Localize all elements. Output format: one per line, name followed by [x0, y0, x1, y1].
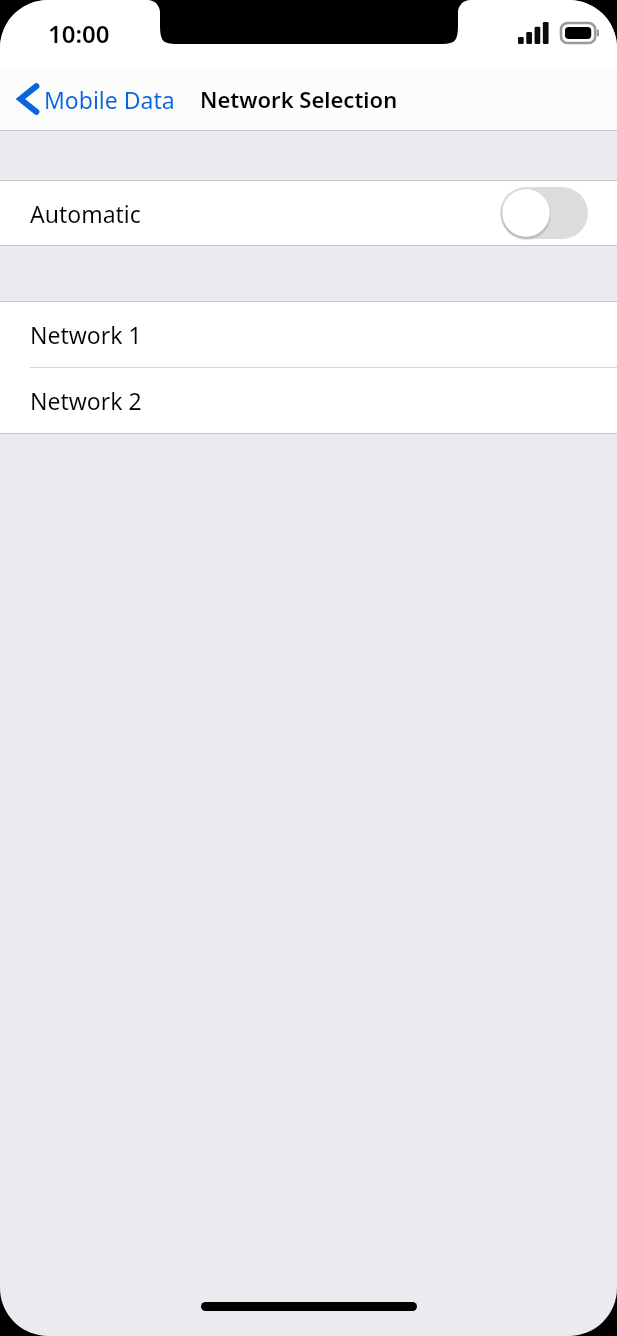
staticText: Automatic	[30, 198, 141, 229]
staticText: 10:00	[48, 17, 110, 50]
staticText: Network 1	[30, 319, 142, 350]
button[interactable]: Network 1	[0, 302, 617, 367]
staticText: Network 2	[30, 385, 142, 416]
button[interactable]: Automatic toggle	[500, 187, 588, 239]
button[interactable]: Back	[0, 77, 183, 121]
other: Back	[18, 83, 38, 115]
staticText: Mobile Data	[44, 84, 175, 115]
staticText: Network Selection	[200, 84, 398, 114]
button[interactable]: Network 2	[0, 368, 617, 433]
button[interactable]: Automatic	[0, 181, 617, 245]
